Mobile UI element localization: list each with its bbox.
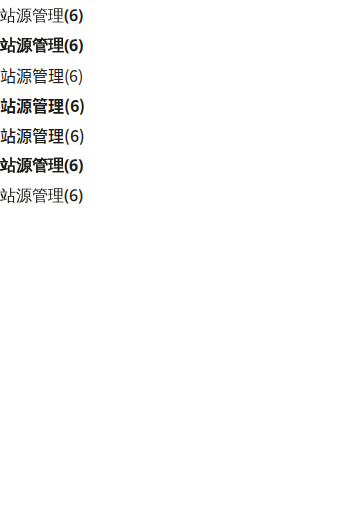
staticText: 站源管理(6) — [0, 93, 85, 117]
staticText: 站源管理(6) — [0, 154, 83, 176]
staticText: 站源管理(6) — [0, 34, 83, 56]
staticText: 站源管理(6) — [0, 184, 83, 206]
staticText: 站源管理(6) — [0, 63, 83, 87]
staticText: 站源管理(6) — [0, 4, 83, 26]
staticText: 站源管理(6) — [0, 123, 85, 147]
